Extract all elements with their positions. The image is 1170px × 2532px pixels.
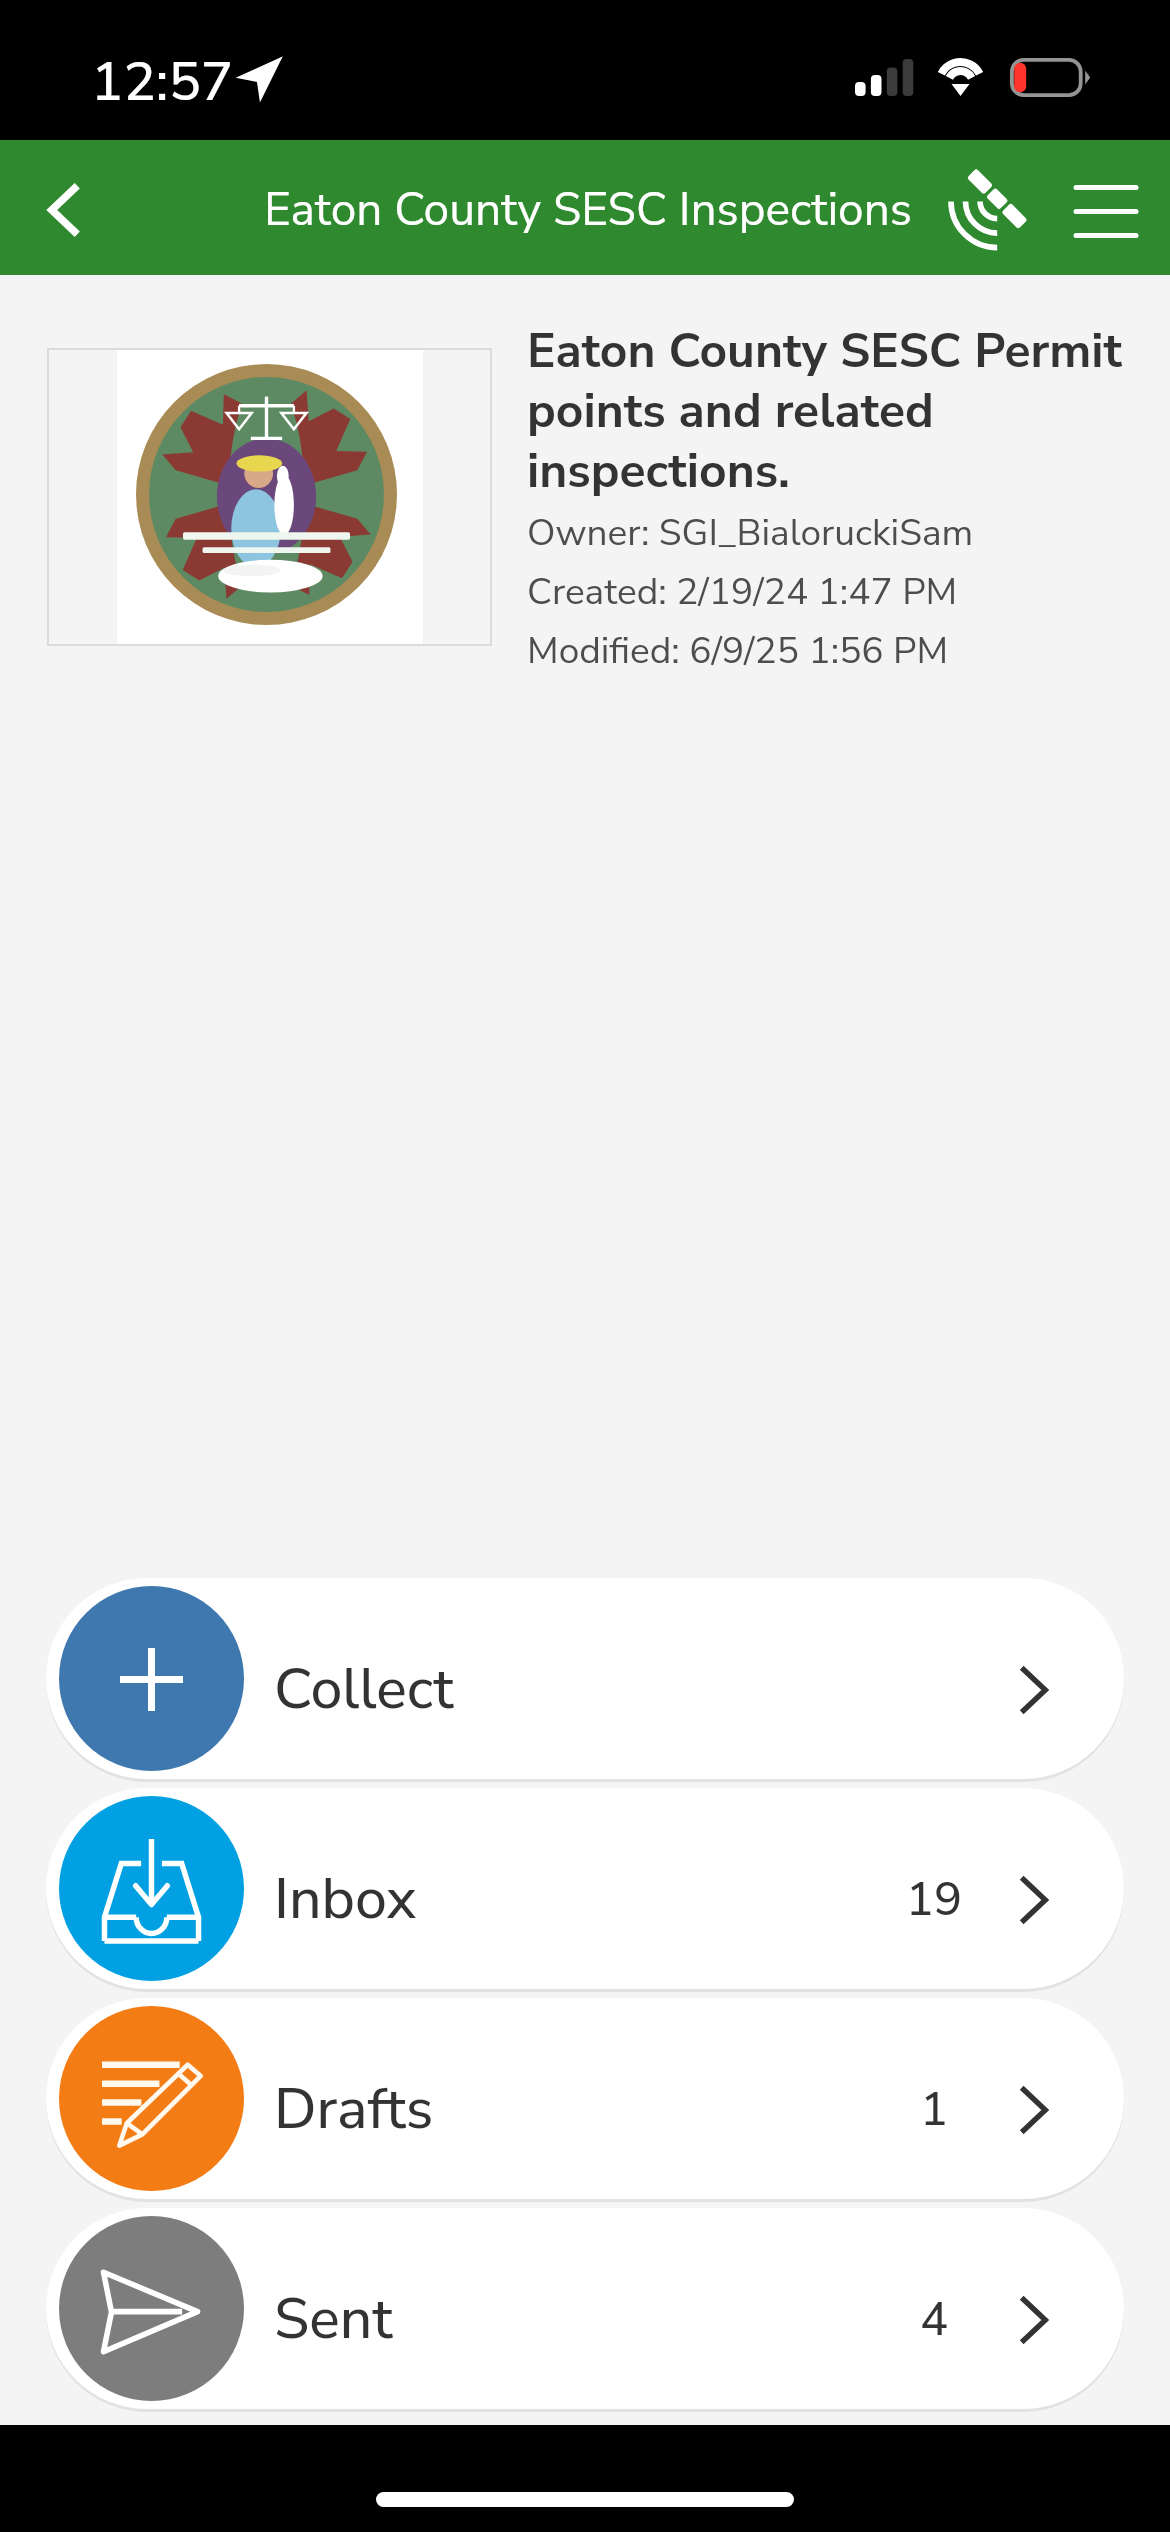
button[interactable]: Sent: [46, 2208, 1124, 2409]
staticText: Eaton County SESC Permit points and rela…: [527, 323, 1143, 503]
staticText: 4: [859, 2296, 1009, 2348]
button[interactable]: Location status: [926, 140, 1042, 275]
staticText: Modified: 6/9/25 1:56 PM: [527, 628, 949, 675]
staticText: Created: 2/19/24 1:47 PM: [527, 569, 958, 616]
button[interactable]: Menu: [1046, 140, 1164, 275]
button[interactable]: Inbox: [46, 1788, 1124, 1989]
staticText: Eaton County SESC Inspections: [264, 183, 912, 239]
staticText: Inbox: [274, 1871, 417, 1935]
staticText: 12:57: [91, 45, 234, 119]
staticText: Drafts: [274, 2081, 434, 2145]
staticText: Sent: [274, 2291, 393, 2355]
staticText: 1: [859, 2086, 1009, 2138]
button[interactable]: Collect: [46, 1578, 1124, 1779]
staticText: 19: [859, 1876, 1009, 1928]
button[interactable]: Back: [6, 144, 122, 275]
staticText: Collect: [274, 1661, 454, 1725]
button[interactable]: Drafts: [46, 1998, 1124, 2199]
staticText: Owner: SGI_BialoruckiSam: [527, 510, 974, 557]
